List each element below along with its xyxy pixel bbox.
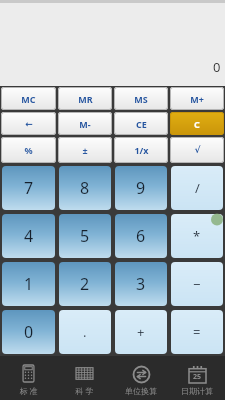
button[interactable]: 1 bbox=[2, 262, 55, 306]
button[interactable]: * bbox=[171, 214, 223, 258]
button[interactable]: 4 bbox=[2, 214, 55, 258]
staticText: 1/x bbox=[134, 144, 149, 156]
button[interactable]: ± bbox=[58, 137, 112, 163]
button[interactable]: M- bbox=[58, 112, 112, 135]
button[interactable]: 2 bbox=[59, 262, 111, 306]
button[interactable]: MR bbox=[58, 87, 112, 110]
staticText: M+ bbox=[190, 93, 204, 105]
button[interactable]: 7 bbox=[2, 166, 55, 210]
staticText: . bbox=[83, 323, 87, 341]
staticText: % bbox=[24, 144, 33, 156]
staticText: 1 bbox=[24, 273, 34, 295]
staticText: ← bbox=[25, 119, 33, 129]
staticText: 0 bbox=[213, 58, 221, 76]
staticText: 日期计算 bbox=[181, 386, 213, 396]
staticText: ± bbox=[82, 144, 88, 156]
button[interactable]: − bbox=[171, 262, 223, 306]
button[interactable]: 科学 bbox=[56, 356, 112, 400]
staticText: / bbox=[195, 179, 200, 197]
staticText: 8 bbox=[80, 177, 90, 199]
staticText: 单位换算 bbox=[125, 386, 157, 396]
staticText: 6 bbox=[136, 225, 146, 247]
button[interactable]: MS bbox=[114, 87, 168, 110]
staticText: 5 bbox=[80, 225, 90, 247]
staticText: M- bbox=[79, 118, 91, 130]
staticText: 0 bbox=[24, 321, 34, 343]
button[interactable]: √ bbox=[170, 137, 224, 163]
staticText: CE bbox=[136, 118, 147, 130]
button[interactable]: ← bbox=[1, 112, 56, 135]
staticText: MR bbox=[78, 93, 93, 105]
staticText: C bbox=[194, 118, 200, 130]
button[interactable]: 单位换算 bbox=[113, 356, 169, 400]
staticText: MC bbox=[21, 93, 36, 105]
other: 日期计算 bbox=[189, 366, 206, 383]
staticText: = bbox=[193, 323, 201, 341]
button[interactable]: / bbox=[171, 166, 223, 210]
staticText: 3 bbox=[136, 273, 146, 295]
staticText: 科 学 bbox=[75, 385, 94, 396]
staticText: 4 bbox=[24, 225, 34, 247]
other: 科学 bbox=[76, 365, 93, 382]
button[interactable]: + bbox=[115, 310, 167, 354]
other: 标准 bbox=[20, 365, 37, 382]
staticText: − bbox=[193, 275, 201, 293]
button[interactable]: = bbox=[171, 310, 223, 354]
staticText: √ bbox=[194, 145, 201, 155]
button[interactable]: M+ bbox=[170, 87, 224, 110]
staticText: 7 bbox=[24, 177, 34, 199]
button[interactable]: 1/x bbox=[114, 137, 168, 163]
button[interactable]: 5 bbox=[59, 214, 111, 258]
button[interactable]: MC bbox=[1, 87, 56, 110]
button[interactable]: 6 bbox=[115, 214, 167, 258]
staticText: 标 准 bbox=[19, 385, 38, 396]
button[interactable]: % bbox=[1, 137, 56, 163]
staticText: 2 bbox=[80, 273, 90, 295]
staticText: * bbox=[193, 227, 201, 245]
staticText: MS bbox=[134, 93, 148, 105]
staticText: + bbox=[137, 323, 145, 341]
button[interactable]: C bbox=[170, 112, 224, 135]
other: 单位换算 bbox=[133, 366, 150, 383]
staticText: 9 bbox=[136, 177, 146, 199]
button[interactable]: 8 bbox=[59, 166, 111, 210]
button[interactable]: . bbox=[59, 310, 111, 354]
button[interactable]: 9 bbox=[115, 166, 167, 210]
button[interactable]: CE bbox=[114, 112, 168, 135]
button[interactable]: 标准 bbox=[0, 356, 56, 400]
button[interactable]: 3 bbox=[115, 262, 167, 306]
button[interactable]: 0 bbox=[2, 310, 55, 354]
staticText: 25 bbox=[193, 372, 202, 382]
button[interactable]: 日期计算 bbox=[169, 356, 225, 400]
